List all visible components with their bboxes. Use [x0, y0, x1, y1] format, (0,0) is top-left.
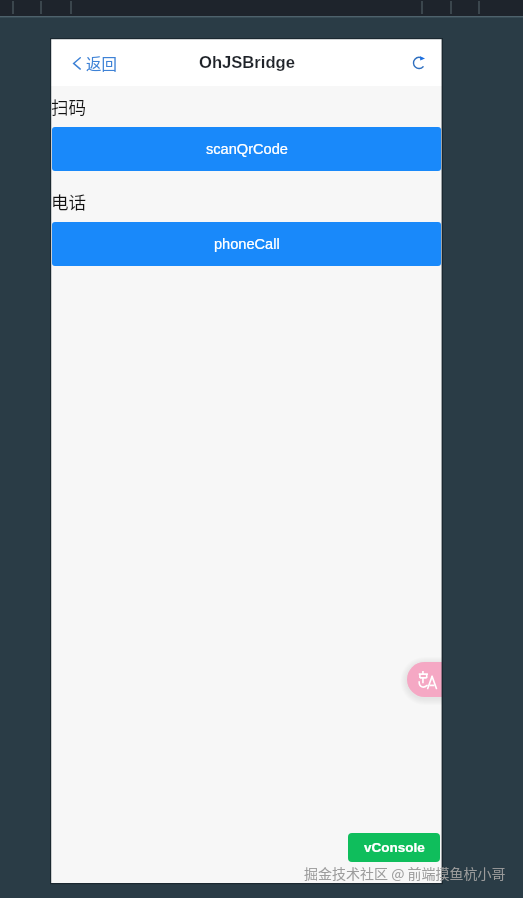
staticText: 返回: [86, 52, 117, 74]
staticText: 扫码: [51, 94, 87, 119]
staticText: 掘金技术社区 @ 前端摸鱼杭小哥: [304, 863, 506, 883]
button[interactable]: 返回: [51, 39, 131, 86]
staticText: phoneCall: [214, 236, 280, 252]
staticText: vConsole: [364, 840, 425, 855]
button[interactable]: phoneCall: [52, 222, 441, 266]
button[interactable]: Translate language: [407, 662, 442, 697]
button[interactable]: Refresh: [407, 51, 431, 75]
button[interactable]: vConsole: [348, 833, 440, 862]
staticText: 电话: [51, 189, 87, 214]
staticText: scanQrCode: [206, 141, 288, 157]
button[interactable]: scanQrCode: [52, 127, 441, 171]
staticText: OhJSBridge: [199, 53, 295, 72]
